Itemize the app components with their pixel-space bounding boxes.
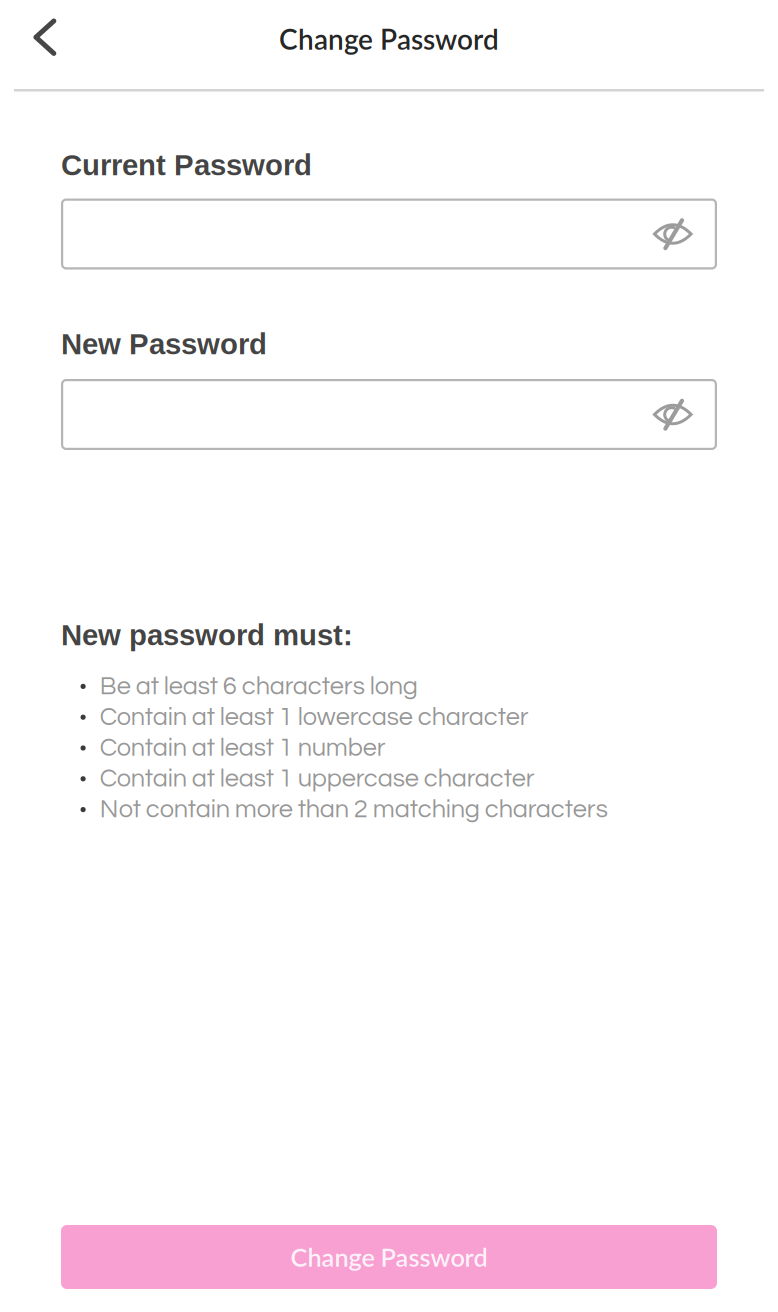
- staticText: Change Password: [279, 22, 499, 56]
- button[interactable]: Back: [0, 0, 86, 91]
- button[interactable]: Change Password: [61, 1225, 717, 1289]
- staticText: Be at least 6 characters long: [100, 673, 418, 699]
- staticText: New password must:: [61, 619, 353, 651]
- staticText: New Password: [61, 328, 267, 360]
- staticText: Contain at least 1 uppercase character: [100, 766, 535, 792]
- button[interactable]: Show current password: [639, 198, 717, 269]
- staticText: Contain at least 1 number: [100, 735, 386, 761]
- staticText: Contain at least 1 lowercase character: [100, 704, 529, 730]
- staticText: Change Password: [290, 1242, 487, 1272]
- staticText: Current Password: [61, 149, 312, 181]
- staticText: Not contain more than 2 matching charact…: [100, 797, 608, 823]
- button[interactable]: Show new password: [639, 379, 717, 450]
